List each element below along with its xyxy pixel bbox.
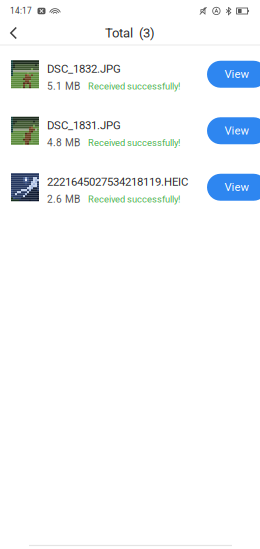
staticText: Total (3): [105, 25, 155, 41]
staticText: View: [224, 124, 249, 137]
staticText: Received successfully!: [88, 81, 180, 92]
button[interactable]: DSC_1831.JPG: [0, 102, 260, 159]
staticText: 14:17: [10, 6, 32, 16]
button[interactable]: DSC_1832.JPG: [0, 46, 260, 102]
staticText: View: [224, 68, 249, 81]
staticText: 2221645027534218119.HEIC: [47, 175, 188, 188]
staticText: 4.8 MB: [47, 137, 80, 149]
staticText: DSC_1832.JPG: [47, 62, 121, 75]
staticText: Received successfully!: [88, 137, 180, 148]
button[interactable]: 2221645027534218119.HEIC: [0, 159, 260, 215]
button[interactable]: Back: [0, 24, 27, 42]
staticText: Received successfully!: [88, 194, 180, 205]
staticText: DSC_1831.JPG: [47, 119, 121, 132]
staticText: 2.6 MB: [47, 193, 80, 205]
staticText: 5.1 MB: [47, 80, 80, 92]
staticText: View: [224, 181, 249, 194]
